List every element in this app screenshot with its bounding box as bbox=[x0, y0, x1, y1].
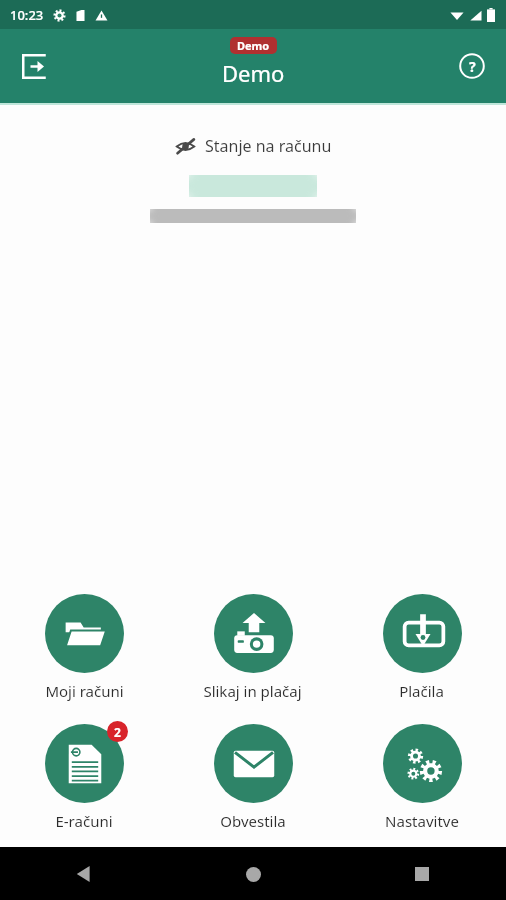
button[interactable]: Slikaj in plačaj bbox=[168, 585, 337, 703]
button[interactable]: Odjava bbox=[12, 44, 56, 88]
button[interactable]: Nastavitve bbox=[337, 715, 506, 833]
button[interactable]: Recent apps bbox=[400, 852, 444, 896]
staticText: Moji računi bbox=[45, 681, 124, 701]
button[interactable]: Pomoč bbox=[450, 44, 494, 88]
button[interactable]: Home bbox=[231, 852, 275, 896]
staticText: Demo bbox=[222, 58, 285, 88]
staticText: Plačila bbox=[399, 681, 444, 701]
staticText: Obvestila bbox=[220, 811, 286, 831]
staticText: Slikaj in plačaj bbox=[203, 681, 302, 701]
button[interactable]: 2 bbox=[0, 715, 168, 833]
staticText: Stanje na računu bbox=[205, 135, 332, 157]
button[interactable]: Plačila bbox=[337, 585, 506, 703]
button[interactable]: Stanje na računu bbox=[167, 131, 340, 161]
staticText: E-računi bbox=[55, 811, 113, 831]
button[interactable]: Obvestila bbox=[168, 715, 337, 833]
staticText: 2 bbox=[114, 724, 121, 740]
staticText: 10:23 bbox=[10, 6, 44, 24]
button[interactable]: Moji računi bbox=[0, 585, 168, 703]
staticText: ? bbox=[469, 57, 476, 76]
button[interactable]: Back bbox=[62, 852, 106, 896]
staticText: Demo bbox=[237, 38, 270, 53]
staticText: Nastavitve bbox=[385, 811, 459, 831]
